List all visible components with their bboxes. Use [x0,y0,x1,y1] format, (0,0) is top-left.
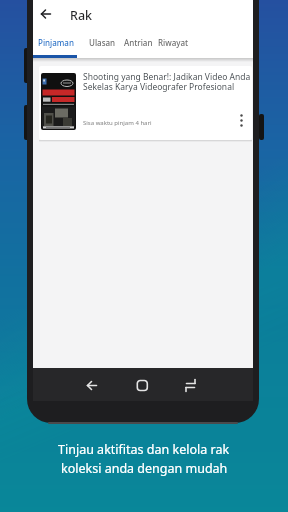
button[interactable]: Antrian [124,37,153,48]
button[interactable] [41,9,51,19]
button[interactable]: Ulasan [89,37,116,48]
button[interactable] [39,66,252,140]
button[interactable] [78,370,106,399]
button[interactable]: Riwayat [158,37,189,48]
button[interactable] [176,370,204,399]
staticText: Sisa waktu pinjam 4 hari [83,119,152,127]
staticText: Shooting yang Benar!: Jadikan Video Anda… [83,71,251,93]
staticText: koleksi anda dengan mudah [61,460,228,477]
staticText: Tinjau aktifitas dan kelola rak [58,441,230,458]
button[interactable] [128,370,156,399]
button[interactable] [239,113,244,128]
staticText: Rak [70,7,93,24]
button[interactable]: Pinjaman [38,37,74,48]
